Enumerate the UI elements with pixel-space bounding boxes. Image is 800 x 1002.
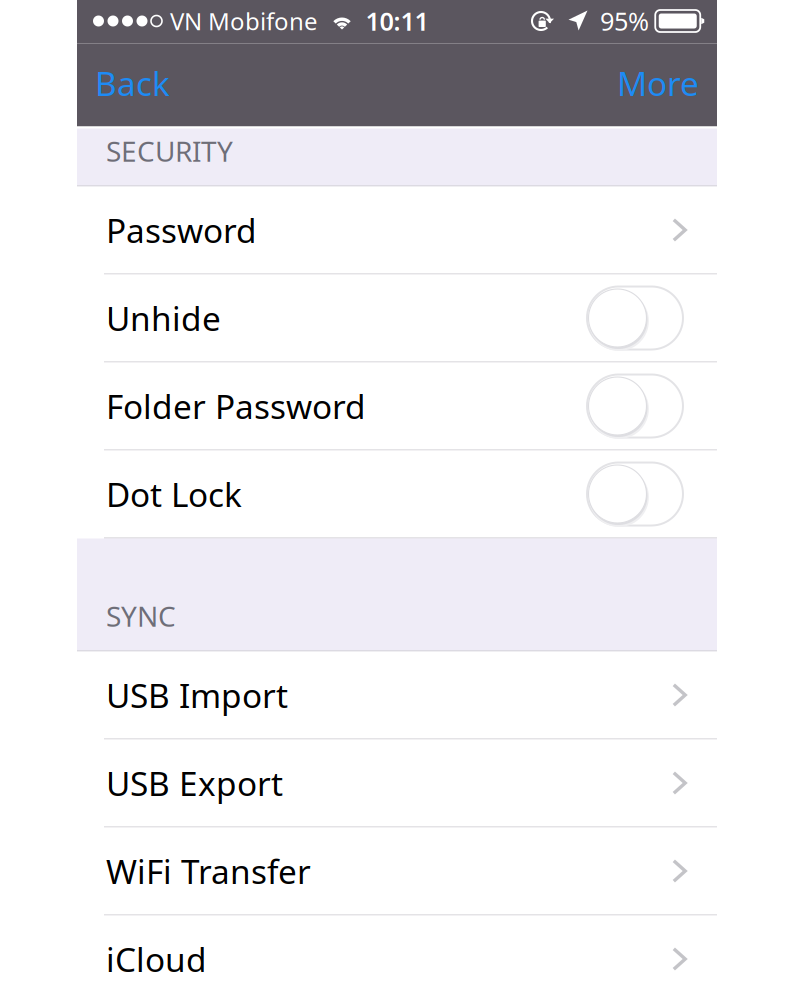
button[interactable]: Unhide (77, 274, 717, 362)
staticText: SYNC (106, 597, 176, 634)
staticText: WiFi Transfer (106, 849, 311, 893)
button[interactable]: Back (77, 43, 188, 126)
button[interactable]: Dot Lock (587, 462, 683, 525)
staticText: 10:11 (365, 4, 428, 38)
staticText: Back (95, 61, 170, 105)
button[interactable]: iCloud (77, 915, 717, 1002)
button[interactable]: Unhide (587, 286, 683, 349)
button[interactable]: Dot Lock (77, 450, 717, 538)
button[interactable]: Folder Password (77, 362, 717, 450)
button[interactable]: Folder Password (587, 374, 683, 437)
staticText: SECURITY (106, 132, 233, 169)
staticText: USB Import (106, 673, 288, 717)
staticText: iCloud (106, 937, 207, 981)
staticText: 95% (600, 4, 649, 38)
staticText: VN Mobifone (170, 5, 318, 37)
button[interactable]: WiFi Transfer (77, 827, 717, 915)
button[interactable]: USB Import (77, 651, 717, 739)
staticText: USB Export (106, 761, 283, 805)
button[interactable]: Password (77, 186, 717, 274)
button[interactable]: More (599, 43, 717, 126)
button[interactable]: USB Export (77, 739, 717, 827)
staticText: Folder Password (106, 384, 366, 428)
staticText: More (617, 61, 699, 105)
staticText: Unhide (106, 296, 221, 340)
staticText: Password (106, 208, 257, 252)
staticText: Dot Lock (106, 472, 242, 516)
